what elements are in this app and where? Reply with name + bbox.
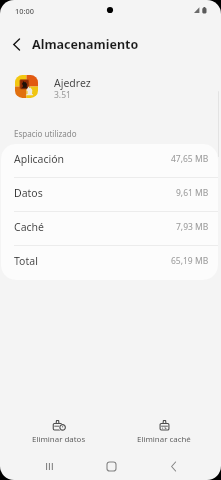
button[interactable]: Caché xyxy=(1,212,218,246)
button[interactable]: Eliminar datos xyxy=(6,408,112,448)
staticText: Espacio utilizado xyxy=(14,128,77,139)
staticText: 9,61 MB xyxy=(176,187,209,199)
button[interactable]: Total xyxy=(1,246,218,280)
staticText: 47,65 MB xyxy=(171,153,209,165)
staticText: Almacenamiento xyxy=(32,36,139,53)
button[interactable]: Eliminar caché xyxy=(111,408,217,448)
staticText: 3.51 xyxy=(54,89,71,101)
button[interactable]: Back xyxy=(161,452,185,480)
staticText: 10:00 xyxy=(15,6,34,16)
button[interactable]: Navigate up xyxy=(0,32,32,56)
staticText: Ajedrez xyxy=(54,76,91,90)
button[interactable]: Datos xyxy=(1,178,218,212)
staticText: 7,93 MB xyxy=(176,221,209,233)
button[interactable]: Home xyxy=(99,452,123,480)
button[interactable]: Recent apps xyxy=(37,452,61,480)
staticText: 65,19 MB xyxy=(171,255,209,267)
staticText: Total xyxy=(14,254,38,268)
button[interactable]: Aplicación xyxy=(1,144,218,178)
staticText: Eliminar caché xyxy=(137,434,191,445)
staticText: Caché xyxy=(14,220,44,234)
staticText: Datos xyxy=(14,186,43,200)
staticText: Aplicación xyxy=(14,152,65,166)
staticText: Eliminar datos xyxy=(32,434,86,445)
